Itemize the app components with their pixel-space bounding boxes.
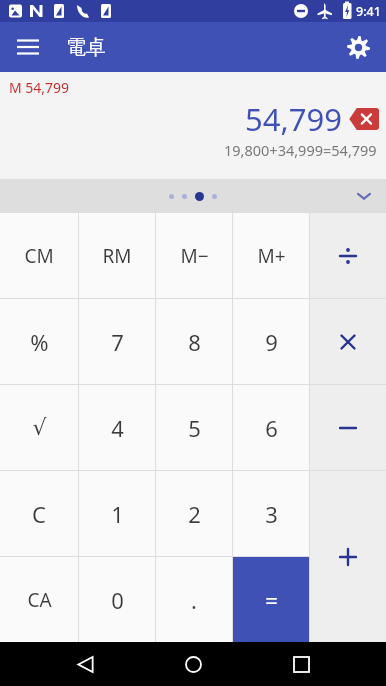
staticText: 7 [111, 327, 124, 357]
button[interactable]: 0 [79, 557, 155, 642]
staticText: 電卓 [66, 35, 106, 60]
staticText: √ [32, 415, 47, 441]
button[interactable]: M+ [233, 213, 309, 298]
staticText: 4 [111, 413, 124, 443]
staticText: 3 [265, 499, 278, 529]
staticText: CA [27, 587, 52, 613]
staticText: 1 [111, 499, 124, 529]
button[interactable]: Expand [348, 180, 380, 212]
staticText: 19,800+34,999=54,799 [224, 140, 377, 160]
button[interactable]: C [0, 471, 78, 556]
staticText: C [32, 499, 46, 529]
button[interactable]: Home [170, 642, 216, 686]
button[interactable]: Menu [6, 25, 50, 69]
staticText: 0 [111, 585, 124, 615]
staticText: . [191, 585, 197, 615]
button[interactable]: 8 [156, 299, 232, 384]
button[interactable]: 9 [233, 299, 309, 384]
staticText: 8 [188, 327, 201, 357]
button[interactable]: Divide [310, 213, 386, 298]
staticText: = [265, 585, 278, 615]
staticText: 2 [188, 499, 201, 529]
staticText: 9 [265, 327, 278, 357]
button[interactable]: Back [62, 642, 108, 686]
button[interactable]: 2 [156, 471, 232, 556]
button[interactable]: 4 [79, 385, 155, 470]
staticText: M− [180, 243, 209, 269]
button[interactable]: CM [0, 213, 78, 298]
staticText: 6 [265, 413, 278, 443]
button[interactable]: M− [156, 213, 232, 298]
button[interactable]: = [233, 557, 309, 642]
button[interactable]: Settings [336, 25, 380, 69]
button[interactable]: Plus [310, 471, 386, 642]
button[interactable]: Backspace [349, 108, 379, 130]
button[interactable]: % [0, 299, 78, 384]
staticText: M 54,799 [9, 78, 70, 97]
button[interactable]: 3 [233, 471, 309, 556]
button[interactable]: RM [79, 213, 155, 298]
staticText: M+ [257, 243, 286, 269]
staticText: RM [102, 243, 132, 269]
button[interactable]: √ [0, 385, 78, 470]
button[interactable]: 6 [233, 385, 309, 470]
staticText: 5 [188, 413, 201, 443]
staticText: % [30, 327, 49, 357]
button[interactable]: CA [0, 557, 78, 642]
button[interactable]: Minus [310, 385, 386, 470]
button[interactable]: 5 [156, 385, 232, 470]
button[interactable]: 1 [79, 471, 155, 556]
button[interactable]: Recents [278, 642, 324, 686]
button[interactable]: Multiply [310, 299, 386, 384]
staticText: 54,799 [245, 98, 342, 140]
button[interactable]: 7 [79, 299, 155, 384]
button[interactable]: . [156, 557, 232, 642]
staticText: 9:41 [356, 3, 381, 20]
staticText: CM [24, 243, 54, 269]
